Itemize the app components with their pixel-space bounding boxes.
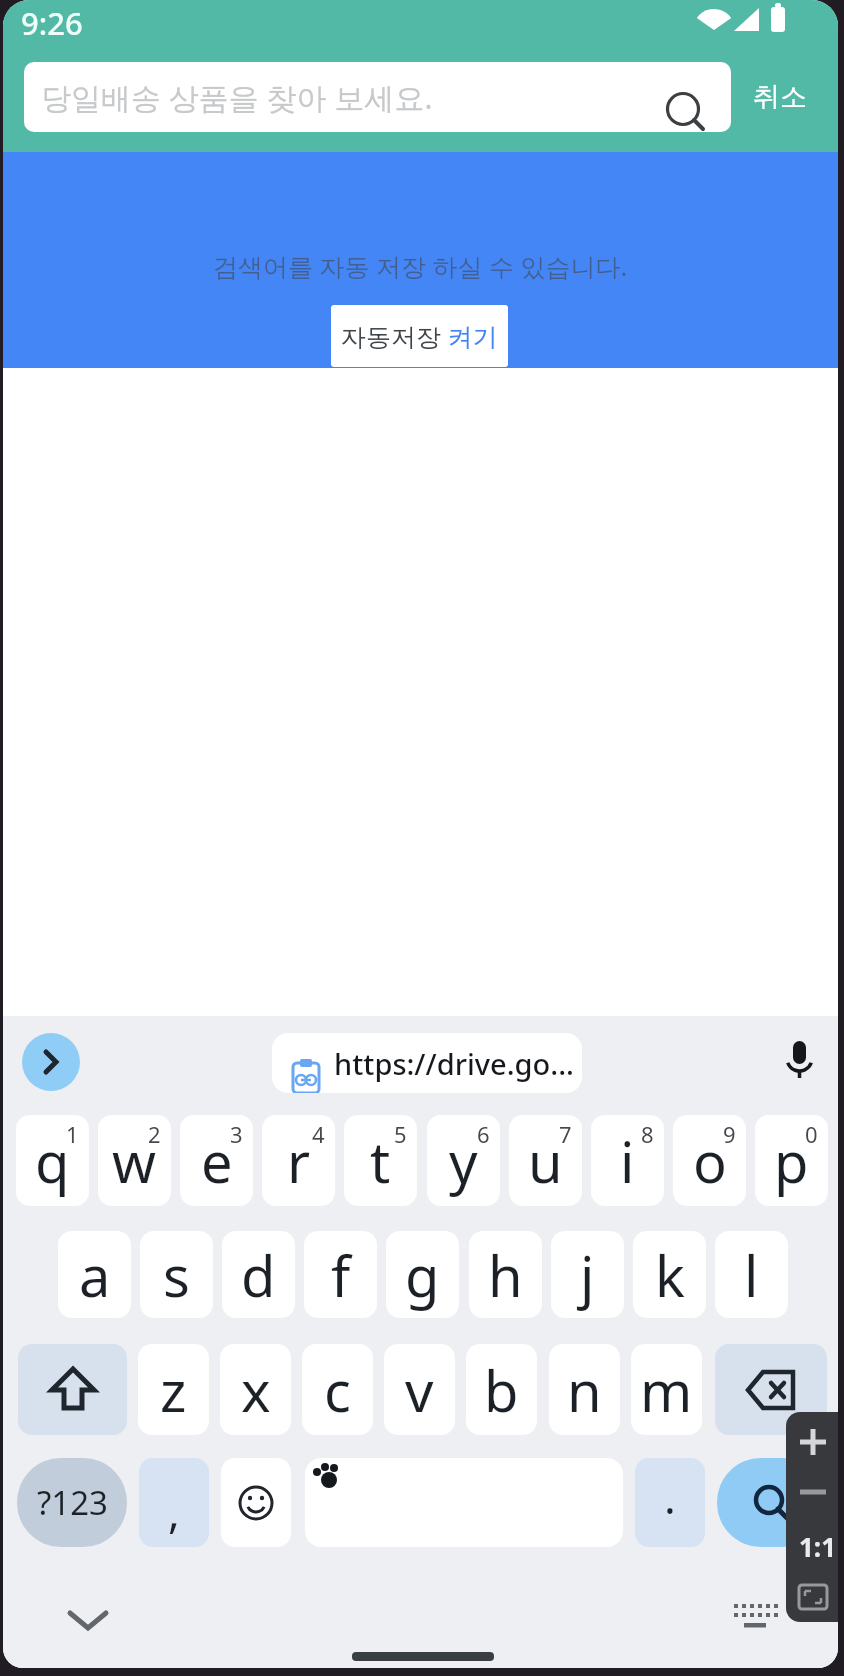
staticText: b (484, 1352, 519, 1428)
staticText: 3 (230, 1119, 243, 1149)
staticText: 4 (312, 1119, 325, 1149)
button[interactable] (221, 1458, 291, 1547)
staticText: 8 (641, 1119, 654, 1149)
button[interactable]: d (222, 1231, 295, 1318)
staticText: m (640, 1352, 693, 1428)
button[interactable]: j (551, 1231, 624, 1318)
staticText: r (287, 1123, 311, 1199)
button[interactable]: x (220, 1344, 291, 1435)
staticText: z (160, 1352, 187, 1428)
staticText: g (405, 1237, 440, 1313)
staticText: w (112, 1123, 157, 1199)
button[interactable]: u (509, 1115, 582, 1206)
staticText: 자동저장 켜기 (341, 319, 498, 353)
staticText: v (405, 1352, 434, 1428)
staticText: d (241, 1237, 276, 1313)
staticText: y (449, 1123, 478, 1199)
staticText: ?123 (37, 1480, 108, 1525)
button[interactable]: g (386, 1231, 459, 1318)
button[interactable]: i (591, 1115, 664, 1206)
button[interactable]: z (138, 1344, 209, 1435)
button[interactable]: ?123 (17, 1458, 127, 1547)
staticText: . (664, 1467, 676, 1527)
staticText: x (241, 1352, 271, 1428)
button[interactable]: f (304, 1231, 377, 1318)
button[interactable]: k (633, 1231, 706, 1318)
staticText: s (163, 1237, 190, 1313)
staticText: 2 (148, 1119, 161, 1149)
button[interactable]: p (755, 1115, 828, 1206)
staticText: 검색어를 자동 저장 하실 수 있습니다. (213, 249, 628, 283)
staticText: i (620, 1123, 635, 1199)
staticText: https://drive.go... (334, 1044, 574, 1083)
button[interactable] (18, 1344, 127, 1435)
button[interactable]: , (139, 1458, 209, 1547)
button[interactable]: y (427, 1115, 500, 1206)
button[interactable]: c (302, 1344, 373, 1435)
button[interactable] (717, 1458, 827, 1547)
button[interactable]: s (140, 1231, 213, 1318)
button[interactable]: r (262, 1115, 335, 1206)
staticText: c (324, 1352, 351, 1428)
staticText: , (168, 1481, 180, 1541)
button[interactable]: v (384, 1344, 455, 1435)
staticText: 취소 (753, 80, 807, 114)
staticText: 9 (723, 1119, 736, 1149)
staticText: u (528, 1123, 563, 1199)
button[interactable]: w (98, 1115, 171, 1206)
button[interactable]: t (344, 1115, 417, 1206)
button[interactable]: m (631, 1344, 702, 1435)
staticText: a (79, 1237, 111, 1313)
button[interactable]: 취소 (725, 62, 835, 132)
button[interactable]: 자동저장 켜기 (331, 305, 508, 367)
staticText: 6 (477, 1119, 490, 1149)
button[interactable] (715, 1344, 827, 1435)
staticText: l (744, 1237, 759, 1313)
button[interactable] (22, 1033, 80, 1091)
button[interactable]: e (180, 1115, 253, 1206)
staticText: 1 (66, 1119, 79, 1149)
button[interactable]: l (715, 1231, 788, 1318)
staticText: j (580, 1237, 595, 1313)
button[interactable]: a (58, 1231, 131, 1318)
staticText: 당일배송 상품을 찾아 보세요. (41, 77, 433, 118)
staticText: e (201, 1123, 233, 1199)
staticText: o (693, 1123, 727, 1199)
staticText: f (331, 1237, 351, 1313)
button[interactable]: h (469, 1231, 542, 1318)
staticText: p (774, 1123, 809, 1199)
staticText: 5 (394, 1119, 407, 1149)
button[interactable]: q (16, 1115, 89, 1206)
staticText: q (35, 1123, 70, 1199)
button[interactable] (305, 1458, 623, 1547)
staticText: k (655, 1237, 685, 1313)
staticText: t (370, 1123, 391, 1199)
button[interactable]: b (466, 1344, 537, 1435)
staticText: 0 (805, 1119, 818, 1149)
staticText: 9:26 (21, 2, 83, 44)
button[interactable]: 당일배송 상품을 찾아 보세요. (24, 62, 731, 132)
staticText: n (567, 1352, 602, 1428)
staticText: 1:1 (799, 1529, 837, 1564)
button[interactable]: https://drive.go... (272, 1033, 582, 1093)
staticText: 7 (559, 1119, 572, 1149)
button[interactable]: n (549, 1344, 620, 1435)
button[interactable]: o (673, 1115, 746, 1206)
staticText: h (488, 1237, 523, 1313)
button[interactable]: . (635, 1458, 705, 1547)
